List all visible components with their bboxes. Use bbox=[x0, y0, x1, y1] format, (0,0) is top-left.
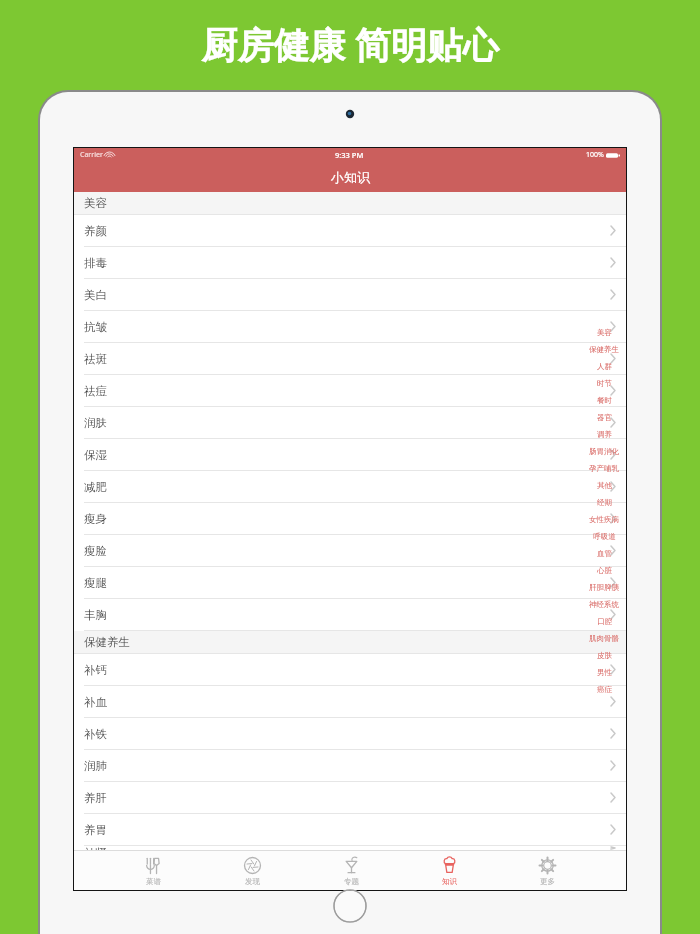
button[interactable]: 专题 bbox=[302, 852, 400, 890]
staticText: 保健养生 bbox=[589, 345, 619, 354]
staticText: 保湿 bbox=[84, 448, 107, 462]
staticText: 呼吸道 bbox=[593, 532, 616, 541]
staticText: 100% bbox=[586, 150, 604, 160]
button[interactable]: 补肾 bbox=[74, 846, 626, 850]
button[interactable]: 保健养生 bbox=[582, 341, 626, 358]
staticText: 更多 bbox=[540, 877, 555, 886]
button[interactable]: 补血 bbox=[74, 686, 626, 717]
button[interactable]: 癌症 bbox=[582, 681, 626, 698]
button[interactable]: 调养 bbox=[582, 426, 626, 443]
staticText: 男性 bbox=[597, 668, 612, 677]
button[interactable]: 瘦脸 bbox=[74, 535, 626, 566]
staticText: 肠胃消化 bbox=[589, 447, 619, 456]
button[interactable]: 心脏 bbox=[582, 562, 626, 579]
staticText: 9:33 PM bbox=[335, 150, 364, 160]
button[interactable]: 皮肤 bbox=[582, 647, 626, 664]
staticText: 补肾 bbox=[84, 846, 107, 850]
button[interactable]: 润肺 bbox=[74, 750, 626, 781]
button[interactable]: 肝胆脾胰 bbox=[582, 579, 626, 596]
button[interactable]: 器官 bbox=[582, 409, 626, 426]
button[interactable]: 发现 bbox=[203, 852, 302, 890]
staticText: 肝胆脾胰 bbox=[589, 583, 619, 592]
staticText: 餐时 bbox=[597, 396, 612, 405]
button[interactable]: 祛斑 bbox=[74, 343, 626, 374]
button[interactable]: 呼吸道 bbox=[582, 528, 626, 545]
staticText: 瘦身 bbox=[84, 512, 107, 526]
staticText: Carrier bbox=[80, 150, 103, 160]
staticText: 养肝 bbox=[84, 791, 107, 805]
staticText: 补铁 bbox=[84, 727, 107, 741]
staticText: 其他 bbox=[597, 481, 612, 490]
staticText: 润肤 bbox=[84, 416, 107, 430]
button[interactable]: 口腔 bbox=[582, 613, 626, 630]
button[interactable]: 瘦腿 bbox=[74, 567, 626, 598]
staticText: 知识 bbox=[442, 877, 457, 886]
button[interactable]: 经期 bbox=[582, 494, 626, 511]
staticText: 养颜 bbox=[84, 224, 107, 238]
staticText: 血管 bbox=[597, 549, 612, 558]
button[interactable]: 减肥 bbox=[74, 471, 626, 502]
staticText: 女性疾病 bbox=[589, 515, 619, 524]
button[interactable]: 时节 bbox=[582, 375, 626, 392]
button[interactable]: 排毒 bbox=[74, 247, 626, 278]
button[interactable]: 菜谱 bbox=[104, 852, 203, 890]
staticText: 减肥 bbox=[84, 480, 107, 494]
staticText: 调养 bbox=[597, 430, 612, 439]
staticText: 美容 bbox=[597, 328, 612, 337]
button[interactable]: 美容 bbox=[74, 192, 626, 214]
staticText: 癌症 bbox=[597, 685, 612, 694]
staticText: 肌肉骨骼 bbox=[589, 634, 619, 643]
staticText: 时节 bbox=[597, 379, 612, 388]
staticText: 祛痘 bbox=[84, 384, 107, 398]
button[interactable]: 人群 bbox=[582, 358, 626, 375]
button[interactable]: 血管 bbox=[582, 545, 626, 562]
button[interactable]: 美白 bbox=[74, 279, 626, 310]
staticText: 口腔 bbox=[597, 617, 612, 626]
staticText: 美容 bbox=[84, 196, 107, 210]
staticText: 皮肤 bbox=[597, 651, 612, 660]
button[interactable]: 美容 bbox=[582, 324, 626, 341]
button[interactable]: 补钙 bbox=[74, 654, 626, 685]
button[interactable]: 抗皱 bbox=[74, 311, 626, 342]
staticText: 发现 bbox=[245, 877, 260, 886]
button[interactable]: 神经系统 bbox=[582, 596, 626, 613]
button[interactable]: 瘦身 bbox=[74, 503, 626, 534]
staticText: 补钙 bbox=[84, 663, 107, 677]
button[interactable]: 孕产哺乳 bbox=[582, 460, 626, 477]
button[interactable]: 保湿 bbox=[74, 439, 626, 470]
button[interactable]: 丰胸 bbox=[74, 599, 626, 630]
staticText: 排毒 bbox=[84, 256, 107, 270]
button[interactable]: 养颜 bbox=[74, 215, 626, 246]
button[interactable]: 祛痘 bbox=[74, 375, 626, 406]
staticText: 瘦腿 bbox=[84, 576, 107, 590]
staticText: 人群 bbox=[597, 362, 612, 371]
staticText: 菜谱 bbox=[146, 877, 161, 886]
staticText: 神经系统 bbox=[589, 600, 619, 609]
staticText: 经期 bbox=[597, 498, 612, 507]
staticText: 补血 bbox=[84, 695, 107, 709]
button[interactable]: 保健养生 bbox=[74, 631, 626, 653]
staticText: 瘦脸 bbox=[84, 544, 107, 558]
button[interactable]: 餐时 bbox=[582, 392, 626, 409]
staticText: 润肺 bbox=[84, 759, 107, 773]
button[interactable]: 知识 bbox=[400, 852, 498, 890]
button[interactable]: 肌肉骨骼 bbox=[582, 630, 626, 647]
staticText: 祛斑 bbox=[84, 352, 107, 366]
button[interactable]: 其他 bbox=[582, 477, 626, 494]
staticText: 养胃 bbox=[84, 823, 107, 837]
staticText: 美白 bbox=[84, 288, 107, 302]
staticText: 小知识 bbox=[331, 169, 370, 185]
button[interactable]: 养胃 bbox=[74, 814, 626, 845]
button[interactable]: 养肝 bbox=[74, 782, 626, 813]
button[interactable]: 男性 bbox=[582, 664, 626, 681]
button[interactable]: 女性疾病 bbox=[582, 511, 626, 528]
staticText: 器官 bbox=[597, 413, 612, 422]
staticText: 孕产哺乳 bbox=[589, 464, 619, 473]
staticText: 专题 bbox=[344, 877, 359, 886]
staticText: 抗皱 bbox=[84, 320, 107, 334]
button[interactable]: 补铁 bbox=[74, 718, 626, 749]
button[interactable]: 肠胃消化 bbox=[582, 443, 626, 460]
button[interactable]: 润肤 bbox=[74, 407, 626, 438]
staticText: 厨房健康 简明贴心 bbox=[201, 20, 499, 69]
button[interactable]: 更多 bbox=[498, 852, 596, 890]
